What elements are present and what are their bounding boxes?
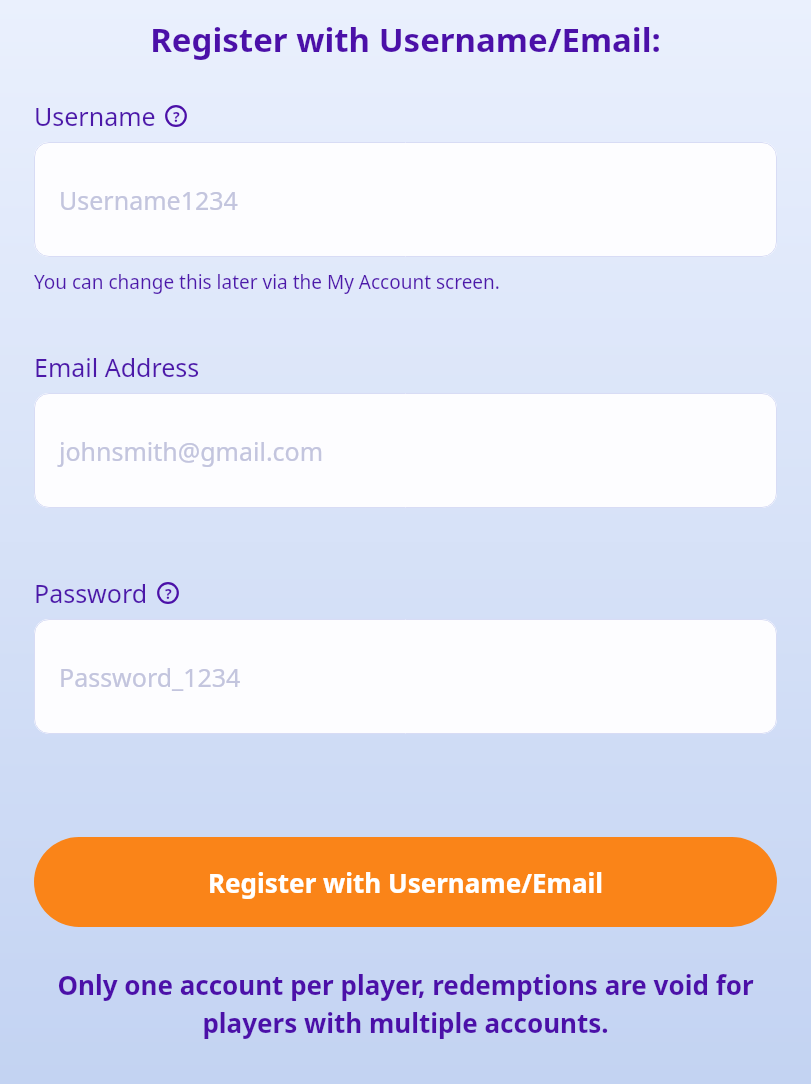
button[interactable]: Password_1234 [34, 619, 777, 734]
staticText: Username1234 [59, 183, 238, 217]
button[interactable]: Username1234 [34, 142, 777, 257]
staticText: Only one account per player, redemptions… [34, 967, 777, 1040]
staticText: Email Address [34, 350, 200, 384]
staticText: ? [173, 107, 180, 126]
button[interactable]: Register with Username/Email [34, 837, 777, 927]
staticText: Username [34, 99, 156, 133]
staticText: ? [165, 584, 172, 603]
staticText: You can change this later via the My Acc… [34, 269, 500, 295]
staticText: Register with Username/Email: [150, 17, 661, 62]
button[interactable]: johnsmith@gmail.com [34, 393, 777, 508]
button[interactable]: Help [156, 581, 180, 605]
staticText: Register with Username/Email [208, 865, 603, 900]
button[interactable]: Help [164, 104, 188, 128]
staticText: Password [34, 576, 148, 610]
staticText: Password_1234 [59, 660, 241, 694]
staticText: johnsmith@gmail.com [59, 434, 324, 468]
